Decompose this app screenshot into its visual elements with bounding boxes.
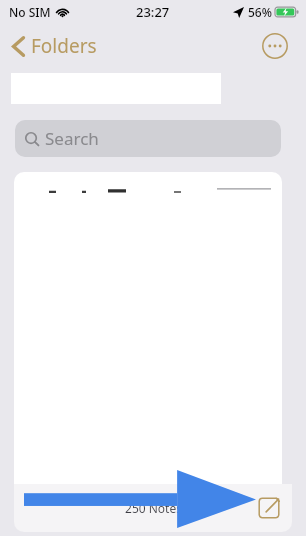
staticText: 56% bbox=[248, 4, 272, 20]
staticText: 250 Notes bbox=[125, 500, 182, 516]
button[interactable]: New note bbox=[254, 493, 284, 523]
staticText: Search bbox=[45, 127, 99, 150]
button[interactable]: More options bbox=[262, 33, 288, 59]
button[interactable]: Folders bbox=[8, 29, 101, 63]
staticText: 23:27 bbox=[136, 3, 170, 21]
button[interactable]: Search bbox=[15, 120, 281, 157]
staticText: No SIM bbox=[9, 4, 51, 20]
staticText: Folders bbox=[31, 33, 97, 59]
